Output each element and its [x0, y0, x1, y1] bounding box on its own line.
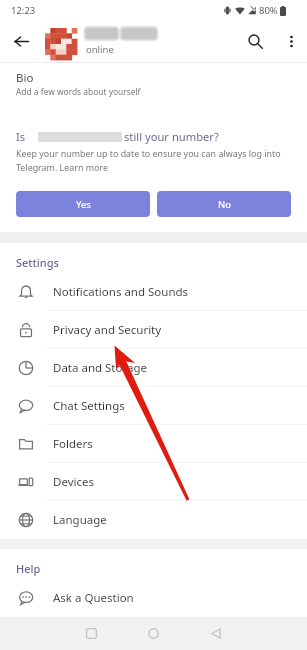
staticText: No	[218, 198, 231, 211]
staticText: Help	[16, 561, 41, 576]
button[interactable]: Bio	[0, 63, 307, 105]
staticText: Settings	[16, 255, 59, 270]
staticText: Chat Settings	[53, 398, 125, 414]
staticText: Ask a Question	[53, 590, 134, 606]
staticText: Bio	[16, 70, 34, 86]
staticText: Is	[16, 129, 26, 144]
staticText: still your number?	[124, 129, 219, 144]
staticText: Yes	[76, 198, 91, 211]
staticText: Folders	[53, 436, 93, 452]
button[interactable]: Yes	[16, 191, 150, 217]
button[interactable]: Home	[139, 617, 167, 650]
button[interactable]: Search	[235, 20, 275, 63]
button[interactable]: No	[157, 191, 291, 217]
staticText: Notifications and Sounds	[53, 284, 189, 300]
button[interactable]: Language	[0, 501, 307, 539]
button[interactable]: More options	[275, 20, 307, 63]
button[interactable]: Devices	[0, 463, 307, 501]
staticText: Add a few words about yourself	[16, 86, 141, 97]
button[interactable]: Back	[202, 617, 230, 650]
staticText: Data and Storage	[53, 360, 148, 376]
staticText: online	[86, 43, 114, 56]
button[interactable]: Recent apps	[77, 617, 105, 650]
button[interactable]: Notifications and Sounds	[0, 273, 307, 311]
staticText: Devices	[53, 474, 94, 490]
button[interactable]: Back	[0, 20, 42, 63]
button[interactable]: Folders	[0, 425, 307, 463]
staticText: 12:23	[11, 4, 36, 17]
staticText: Language	[53, 512, 107, 528]
staticText: 80%	[259, 4, 278, 17]
button[interactable]: Ask a Question	[0, 579, 307, 617]
button[interactable]: Privacy and Security	[0, 311, 307, 349]
staticText: Keep your number up to date to ensure yo…	[16, 147, 281, 174]
button[interactable]: Data and Storage	[0, 349, 307, 387]
button[interactable]: Chat Settings	[0, 387, 307, 425]
staticText: Privacy and Security	[53, 322, 162, 338]
